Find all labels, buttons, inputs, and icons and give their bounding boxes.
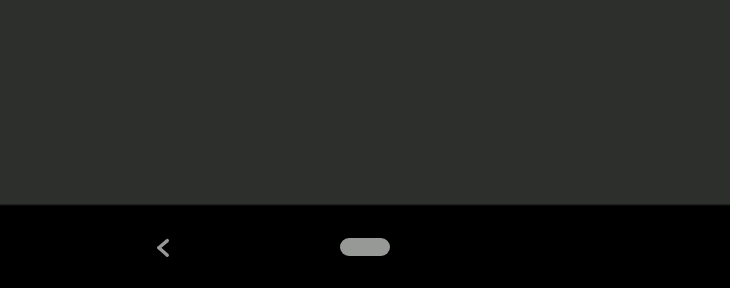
button[interactable]: Home [340,238,390,256]
button[interactable]: Back [141,228,181,268]
